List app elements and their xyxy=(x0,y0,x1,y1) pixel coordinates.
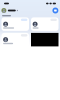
button[interactable]: Profile xyxy=(1,8,6,13)
button[interactable] xyxy=(1,33,29,46)
button[interactable]: Account xyxy=(8,10,18,11)
button[interactable] xyxy=(1,17,29,31)
button[interactable] xyxy=(31,17,58,31)
button[interactable]: New xyxy=(52,7,59,14)
